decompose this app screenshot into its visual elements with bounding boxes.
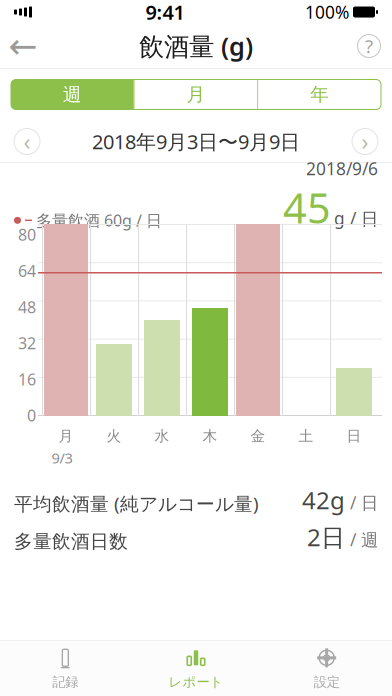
button[interactable]: 記録 bbox=[0, 644, 131, 693]
staticText: 80 bbox=[18, 224, 36, 245]
staticText: 0 bbox=[27, 405, 36, 426]
staticText: 月 bbox=[186, 83, 205, 106]
staticText: 平均飲酒量 (純アルコール量) bbox=[14, 491, 259, 516]
staticText: 45 bbox=[283, 180, 331, 235]
staticText: 週 bbox=[63, 83, 82, 106]
button[interactable]: 週 bbox=[11, 79, 134, 109]
staticText: 多量飲酒日数 bbox=[14, 530, 128, 553]
button[interactable]: レポート bbox=[131, 644, 261, 693]
staticText: 設定 bbox=[314, 674, 340, 690]
staticText: 16 bbox=[18, 369, 36, 390]
staticText: ‹ bbox=[23, 126, 30, 156]
staticText: 2018/9/6 bbox=[306, 157, 378, 180]
button[interactable]: 年 bbox=[258, 79, 381, 109]
staticText: 2018年9月3日〜9月9日 bbox=[92, 128, 300, 155]
staticText: g / 日 bbox=[334, 207, 378, 230]
staticText: 記録 bbox=[52, 674, 78, 690]
staticText: 月 bbox=[58, 427, 73, 445]
staticText: 9:41 bbox=[145, 0, 184, 25]
staticText: 多量飲酒 60g / 日 bbox=[36, 210, 162, 231]
button[interactable]: Next week bbox=[352, 128, 378, 154]
staticText: 2日 bbox=[307, 521, 345, 553]
staticText: 土 bbox=[298, 427, 313, 445]
staticText: ? bbox=[365, 34, 373, 58]
staticText: 9/3 bbox=[51, 448, 72, 467]
staticText: / 日 bbox=[350, 491, 378, 514]
staticText: 64 bbox=[18, 260, 36, 281]
staticText: 火 bbox=[106, 427, 121, 445]
staticText: レポート bbox=[168, 674, 223, 690]
staticText: ← bbox=[8, 26, 37, 66]
staticText: / 週 bbox=[350, 528, 378, 551]
staticText: 48 bbox=[18, 296, 36, 317]
button[interactable]: 設定 bbox=[261, 644, 392, 693]
staticText: › bbox=[361, 126, 368, 156]
button[interactable]: Previous week bbox=[14, 128, 40, 154]
staticText: 金 bbox=[250, 427, 265, 445]
staticText: 32 bbox=[18, 332, 36, 354]
staticText: 100% bbox=[305, 0, 349, 23]
button[interactable]: Back bbox=[0, 24, 46, 68]
staticText: 水 bbox=[154, 427, 169, 445]
button[interactable]: 月 bbox=[135, 79, 257, 109]
staticText: 飲酒量 (g) bbox=[139, 29, 253, 63]
staticText: 日 bbox=[346, 427, 361, 445]
button[interactable]: Help bbox=[346, 24, 392, 68]
staticText: 42g bbox=[302, 484, 345, 516]
staticText: 年 bbox=[310, 83, 329, 106]
staticText: 木 bbox=[202, 427, 217, 445]
